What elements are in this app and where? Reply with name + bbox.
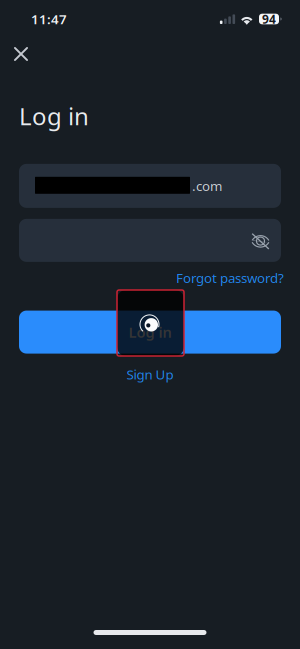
staticText: .com	[192, 177, 222, 195]
button[interactable]: Forgot password?	[176, 266, 284, 290]
button[interactable]: Close	[2, 37, 40, 71]
staticText: Log in	[128, 322, 171, 342]
staticText: Forgot password?	[176, 269, 284, 287]
staticText: 94	[262, 11, 276, 27]
button[interactable]: Sign Up	[122, 362, 177, 387]
button[interactable]: Show password	[244, 225, 274, 255]
button[interactable]: Log in	[19, 311, 281, 354]
button[interactable]: Password	[19, 219, 281, 262]
staticText: Sign Up	[126, 366, 173, 383]
button[interactable]: Email	[19, 164, 281, 208]
staticText: Log in	[19, 100, 89, 132]
staticText: 11:47	[31, 10, 67, 28]
